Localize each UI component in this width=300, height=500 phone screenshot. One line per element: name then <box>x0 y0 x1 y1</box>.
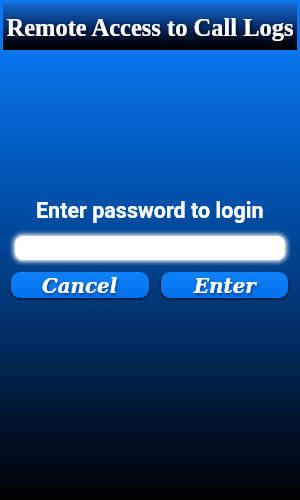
button[interactable] <box>15 236 285 260</box>
staticText: Enter <box>194 274 256 297</box>
button[interactable]: Cancel <box>11 272 149 298</box>
staticText: Cancel <box>42 274 118 297</box>
staticText: Enter password to login <box>36 198 264 223</box>
button[interactable]: Enter <box>161 272 288 298</box>
staticText: Remote Access to Call Logs <box>6 14 294 41</box>
